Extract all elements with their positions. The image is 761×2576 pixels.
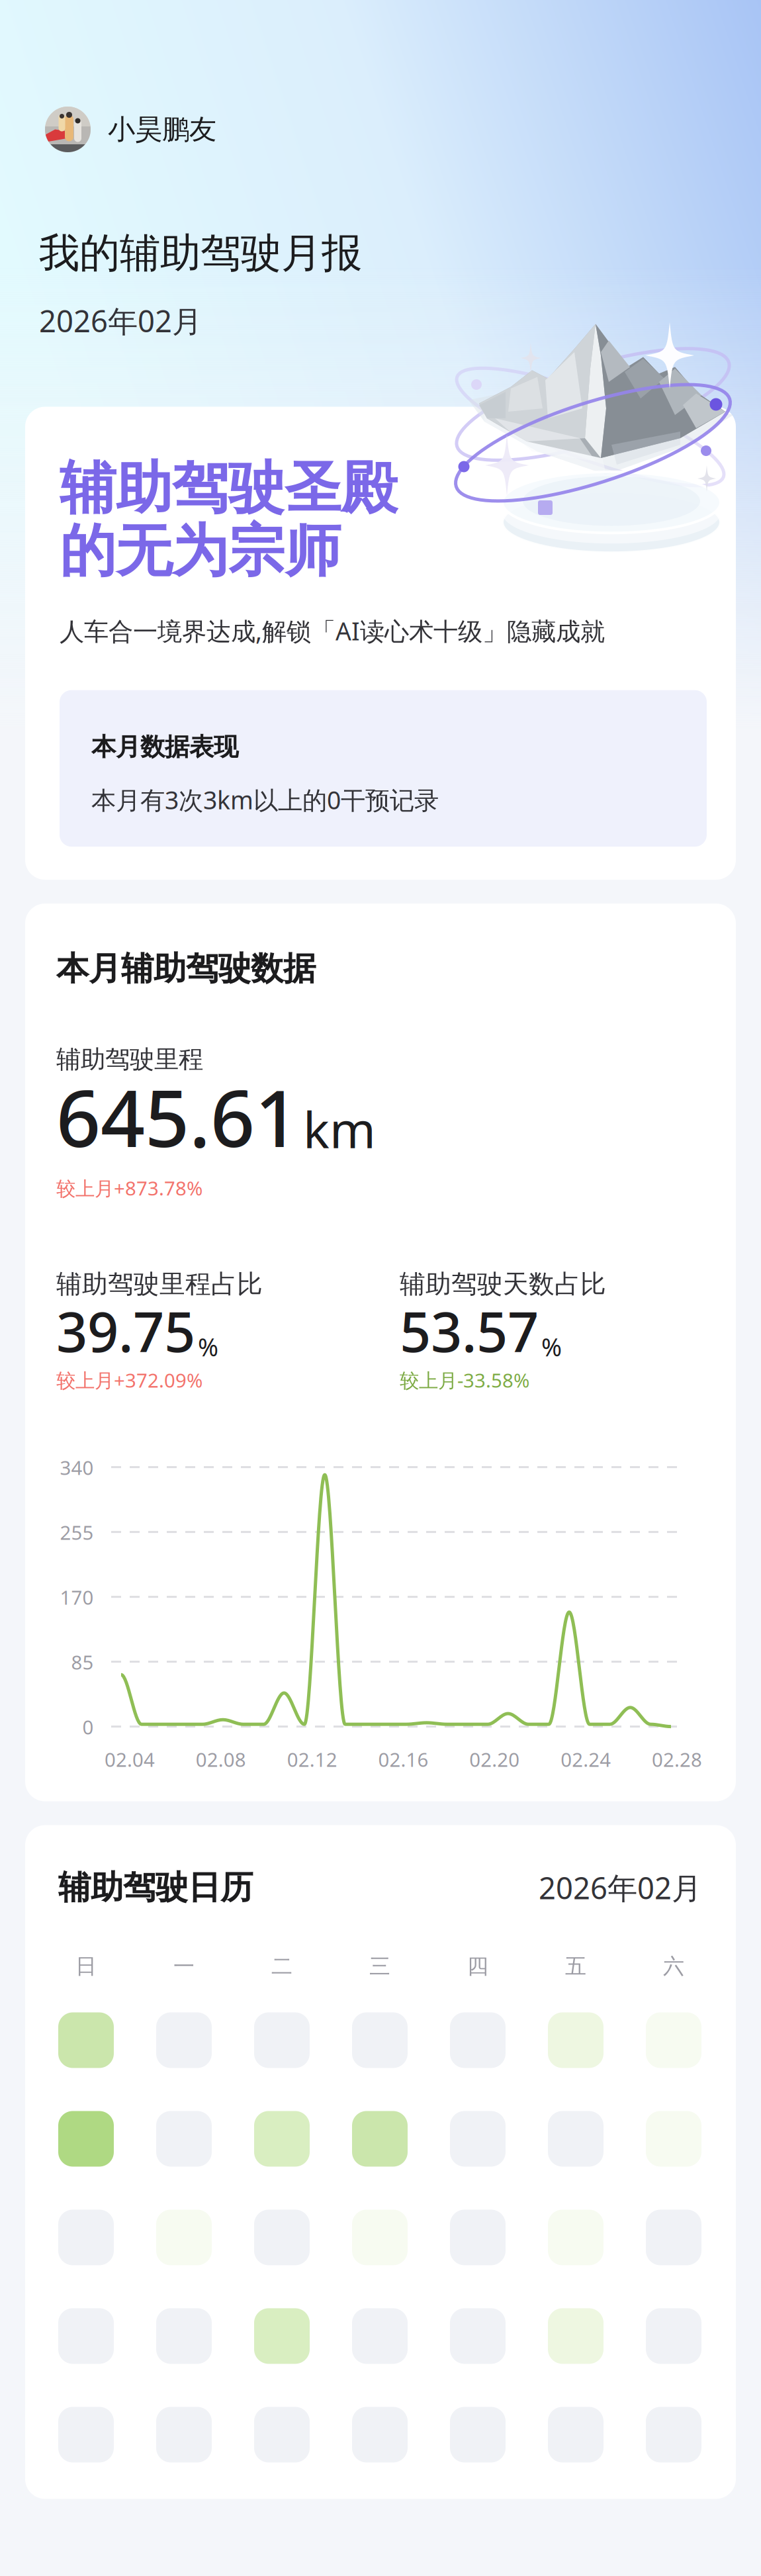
staticText: 2026年02月 — [539, 1868, 701, 1908]
staticText: 辅助驾驶天数占比 — [400, 1268, 606, 1300]
staticText: 02.08 — [196, 1746, 246, 1772]
staticText: 53.57 — [400, 1295, 539, 1367]
staticText: 0 — [82, 1714, 94, 1740]
staticText: 辅助驾驶日历 — [58, 1868, 253, 1908]
staticText: 85 — [71, 1649, 94, 1675]
staticText: 本月有3次3km以上的0干预记录 — [91, 783, 439, 816]
staticText: 二 — [271, 1953, 292, 1979]
staticText: 02.12 — [287, 1746, 337, 1772]
staticText: 02.04 — [105, 1746, 155, 1772]
staticText: 小昊鹏友 — [108, 113, 216, 146]
staticText: 辅助驾驶圣殿 — [60, 454, 397, 523]
staticText: 的无为宗师 — [60, 516, 341, 586]
staticText: 02.20 — [469, 1746, 520, 1772]
staticText: 一 — [173, 1953, 195, 1979]
staticText: 四 — [467, 1953, 488, 1979]
staticText: 02.24 — [561, 1746, 611, 1772]
staticText: 本月辅助驾驶数据 — [56, 949, 316, 989]
staticText: 辅助驾驶里程占比 — [56, 1268, 263, 1300]
staticText: 340 — [60, 1455, 94, 1480]
staticText: 我的辅助驾驶月报 — [39, 228, 362, 278]
staticText: % — [198, 1330, 218, 1363]
staticText: 三 — [369, 1953, 390, 1979]
staticText: 本月数据表现 — [91, 732, 238, 762]
staticText: 170 — [60, 1584, 94, 1610]
staticText: 五 — [565, 1953, 586, 1979]
staticText: 较上月-33.58% — [400, 1367, 529, 1393]
staticText: 日 — [75, 1953, 97, 1979]
staticText: 六 — [663, 1953, 684, 1979]
button[interactable]: 小昊鹏友 — [0, 107, 216, 152]
staticText: 较上月+873.78% — [56, 1175, 202, 1201]
staticText: % — [541, 1330, 562, 1363]
staticText: 02.28 — [652, 1746, 702, 1772]
staticText: 较上月+372.09% — [56, 1367, 202, 1393]
staticText: 辅助驾驶里程 — [56, 1044, 203, 1075]
staticText: 645.61 — [56, 1065, 299, 1168]
staticText: km — [303, 1096, 376, 1162]
staticText: 39.75 — [56, 1295, 195, 1367]
staticText: 255 — [60, 1519, 94, 1545]
staticText: 02.16 — [378, 1746, 428, 1772]
staticText: 2026年02月 — [39, 301, 202, 341]
staticText: 人车合一境界达成,解锁「AI读心术十级」隐藏成就 — [60, 614, 605, 647]
